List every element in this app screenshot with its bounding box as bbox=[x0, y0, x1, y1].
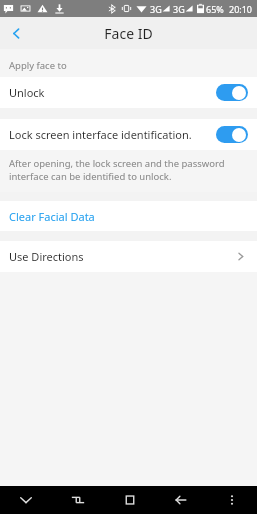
button[interactable]: Clear Facial Data bbox=[0, 201, 257, 231]
button[interactable]: Switch bbox=[52, 486, 104, 514]
button[interactable]: Use Directions bbox=[0, 241, 257, 272]
button[interactable]: Lock screen interface identification. bbox=[0, 119, 257, 150]
button[interactable]: Hide keyboard bbox=[0, 486, 52, 514]
staticText: After opening, the lock screen and the p… bbox=[9, 157, 243, 183]
staticText: Clear Facial Data bbox=[9, 209, 95, 224]
staticText: Lock screen interface identification. bbox=[9, 127, 212, 142]
staticText: Unlock bbox=[9, 85, 212, 100]
staticText: Use Directions bbox=[9, 249, 235, 264]
button[interactable]: Unlock bbox=[0, 77, 257, 108]
button[interactable]: Back bbox=[155, 486, 206, 514]
button[interactable]: Toggle bbox=[216, 126, 248, 143]
staticText: 65% bbox=[206, 3, 224, 15]
button[interactable]: Recents bbox=[104, 486, 155, 514]
staticText: Face ID bbox=[104, 24, 153, 43]
staticText: 3G bbox=[173, 3, 185, 15]
staticText: Apply face to bbox=[9, 59, 67, 72]
button[interactable]: More options bbox=[206, 486, 257, 514]
button[interactable]: Back bbox=[0, 17, 32, 49]
button[interactable]: Toggle bbox=[216, 84, 248, 101]
staticText: 3G bbox=[150, 3, 162, 15]
staticText: 20:10 bbox=[229, 3, 253, 15]
